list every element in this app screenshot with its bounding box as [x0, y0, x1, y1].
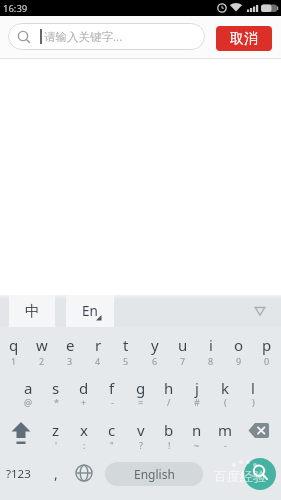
- staticText: o: [234, 335, 244, 355]
- button[interactable]: t: [86, 325, 166, 365]
- button[interactable]: [244, 458, 276, 490]
- button[interactable]: u: [143, 325, 223, 365]
- staticText: c: [108, 420, 116, 440]
- staticText: ?: [139, 439, 143, 451]
- staticText: b: [164, 420, 174, 440]
- staticText: @: [24, 396, 33, 408]
- button[interactable]: [8, 418, 36, 446]
- staticText: *: [54, 396, 59, 408]
- button[interactable]: 中: [9, 295, 55, 327]
- button[interactable]: a: [0, 368, 68, 408]
- staticText: l: [251, 378, 255, 398]
- button[interactable]: En: [66, 295, 114, 327]
- button[interactable]: r: [58, 325, 138, 365]
- button[interactable]: ?123: [0, 454, 58, 494]
- staticText: 2: [39, 355, 45, 367]
- button[interactable]: [248, 422, 272, 439]
- staticText: 9: [236, 355, 242, 367]
- button[interactable]: y: [115, 325, 195, 365]
- staticText: +: [81, 396, 87, 408]
- staticText: 6: [152, 355, 158, 367]
- staticText: k: [221, 378, 230, 398]
- staticText: q: [9, 335, 19, 355]
- button[interactable]: n: [157, 410, 237, 450]
- button[interactable]: [253, 305, 267, 318]
- staticText: 1: [11, 355, 17, 367]
- staticText: 百度经验: [214, 468, 266, 484]
- staticText: -: [224, 439, 227, 451]
- button[interactable]: q: [0, 325, 54, 365]
- staticText: -: [111, 396, 114, 408]
- staticText: u: [178, 335, 188, 355]
- staticText: i: [209, 335, 213, 355]
- staticText: !: [168, 439, 171, 451]
- staticText: g: [136, 378, 146, 398]
- staticText: f: [109, 378, 115, 398]
- button[interactable]: [74, 463, 94, 483]
- staticText: w: [36, 335, 48, 355]
- staticText: t: [123, 335, 129, 355]
- button[interactable]: h: [129, 368, 209, 408]
- staticText: m: [218, 420, 233, 440]
- staticText: 中: [25, 302, 40, 321]
- staticText: 0: [264, 355, 270, 367]
- button[interactable]: 取消: [216, 26, 272, 51]
- staticText: e: [66, 335, 75, 355]
- button[interactable]: j: [157, 368, 237, 408]
- button[interactable]: l: [213, 368, 281, 408]
- staticText: ": [110, 439, 114, 451]
- button[interactable]: ,: [16, 453, 96, 493]
- staticText: y: [151, 335, 159, 355]
- staticText: z: [52, 420, 60, 440]
- staticText: x: [80, 420, 88, 440]
- button[interactable]: b: [129, 410, 209, 450]
- staticText: p: [262, 335, 272, 355]
- staticText: #: [194, 396, 200, 408]
- staticText: s: [52, 378, 60, 398]
- button[interactable]: i: [171, 325, 251, 365]
- button[interactable]: d: [44, 368, 124, 408]
- staticText: 7: [180, 355, 186, 367]
- staticText: ~: [194, 439, 200, 451]
- staticText: j: [195, 378, 199, 398]
- staticText: =: [138, 396, 144, 408]
- button[interactable]: g: [101, 368, 181, 408]
- button[interactable]: k: [185, 368, 265, 408]
- button[interactable]: w: [2, 325, 82, 365]
- staticText: a: [24, 378, 33, 398]
- button[interactable]: o: [199, 325, 279, 365]
- staticText: ,: [54, 464, 58, 483]
- staticText: 8: [208, 355, 214, 367]
- staticText: 16:39: [3, 2, 28, 15]
- button[interactable]: p: [227, 325, 281, 365]
- button[interactable]: English: [105, 462, 203, 486]
- staticText: English: [134, 466, 175, 482]
- staticText: 取消: [230, 30, 258, 48]
- staticText: :: [83, 439, 86, 451]
- button[interactable]: f: [72, 368, 152, 408]
- button[interactable]: v: [101, 410, 181, 450]
- staticText: 请输入关键字...: [44, 29, 123, 45]
- staticText: v: [137, 420, 145, 440]
- button[interactable]: s: [16, 368, 96, 408]
- staticText: ': [55, 439, 58, 451]
- staticText: En: [82, 302, 98, 320]
- button[interactable]: c: [72, 410, 152, 450]
- staticText: 3: [67, 355, 73, 367]
- button[interactable]: z: [16, 410, 96, 450]
- button[interactable]: x: [44, 410, 124, 450]
- staticText: ?123: [6, 466, 31, 482]
- staticText: 4: [95, 355, 101, 367]
- staticText: (: [224, 396, 227, 408]
- staticText: ): [252, 396, 255, 408]
- button[interactable]: m: [185, 410, 265, 450]
- staticText: /: [167, 396, 171, 408]
- staticText: d: [79, 378, 89, 398]
- staticText: n: [192, 420, 202, 440]
- staticText: h: [164, 378, 174, 398]
- staticText: r: [95, 335, 102, 355]
- button[interactable]: [8, 23, 205, 50]
- button[interactable]: e: [30, 325, 110, 365]
- staticText: 5: [123, 355, 129, 367]
